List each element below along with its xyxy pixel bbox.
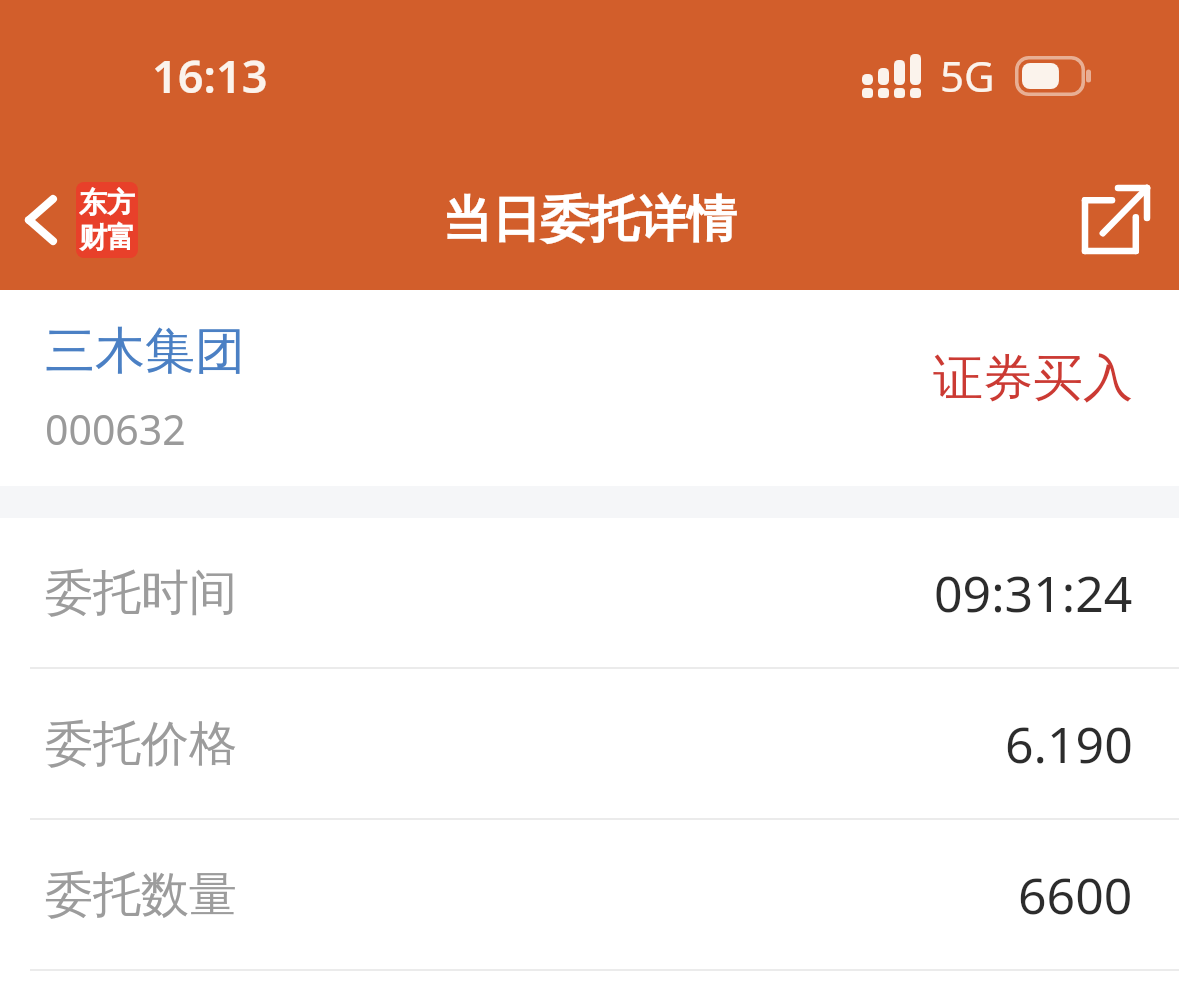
button[interactable]: Back — [0, 168, 152, 272]
staticText: 5G — [940, 47, 995, 104]
staticText: 三木集团 — [45, 320, 245, 383]
staticText: 16:13 — [152, 45, 268, 106]
staticText: 证券买入 — [933, 347, 1133, 410]
staticText: 东方 — [79, 185, 135, 220]
button[interactable]: 委托时间 — [0, 518, 1179, 667]
staticText: 6600 — [1018, 861, 1133, 929]
staticText: 000632 — [45, 401, 186, 457]
button[interactable]: 委托价格 — [0, 669, 1179, 818]
staticText: 财富 — [79, 220, 135, 255]
staticText: 当日委托详情 — [0, 189, 1179, 251]
staticText: 委托价格 — [45, 714, 237, 774]
button[interactable]: Share — [1053, 169, 1179, 271]
button[interactable]: 委托数量 — [0, 820, 1179, 969]
staticText: 委托数量 — [45, 865, 237, 925]
staticText: 委托时间 — [45, 563, 237, 623]
staticText: 09:31:24 — [934, 559, 1133, 627]
button[interactable]: 三木集团 — [0, 290, 1179, 486]
staticText: 6.190 — [1005, 710, 1133, 778]
